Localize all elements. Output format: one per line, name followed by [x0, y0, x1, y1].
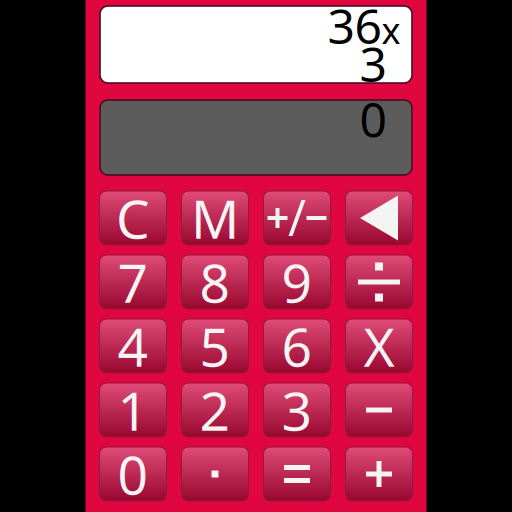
staticText: C [116, 183, 150, 253]
button[interactable]: 6 [263, 319, 330, 373]
button[interactable]: 9 [263, 255, 330, 309]
staticText: 3 [359, 32, 386, 95]
button[interactable]: X [345, 319, 412, 373]
staticText: x [381, 6, 400, 54]
staticText: 3 [281, 375, 312, 445]
staticText: 8 [199, 247, 230, 317]
staticText: 0 [117, 439, 148, 509]
button[interactable]: 8 [181, 255, 248, 309]
staticText: 6 [281, 311, 312, 381]
staticText: M [191, 183, 239, 253]
staticText: 4 [117, 311, 148, 381]
staticText: 7 [117, 247, 148, 317]
staticText: 0 [359, 87, 386, 151]
button[interactable]: M [181, 191, 248, 245]
button[interactable]: 2 [181, 383, 248, 437]
button[interactable]: Equals [263, 447, 330, 501]
button[interactable]: Plus minus [263, 191, 330, 245]
button[interactable]: 1 [99, 383, 166, 437]
button[interactable]: Plus [345, 447, 412, 501]
staticText: 36 [327, 0, 381, 57]
button[interactable]: 4 [99, 319, 166, 373]
button[interactable]: Divide [345, 255, 412, 309]
staticText: 1 [117, 375, 148, 445]
button[interactable]: 7 [99, 255, 166, 309]
button[interactable]: Backspace [345, 191, 412, 245]
button[interactable]: 0 [99, 447, 166, 501]
staticText: 9 [281, 247, 312, 317]
button[interactable]: Minus [345, 383, 412, 437]
button[interactable]: 5 [181, 319, 248, 373]
staticText: 2 [199, 375, 230, 445]
staticText: X [363, 311, 394, 381]
button[interactable]: C [99, 191, 166, 245]
staticText: 5 [199, 311, 230, 381]
button[interactable]: Decimal point [181, 447, 248, 501]
button[interactable]: 3 [263, 383, 330, 437]
